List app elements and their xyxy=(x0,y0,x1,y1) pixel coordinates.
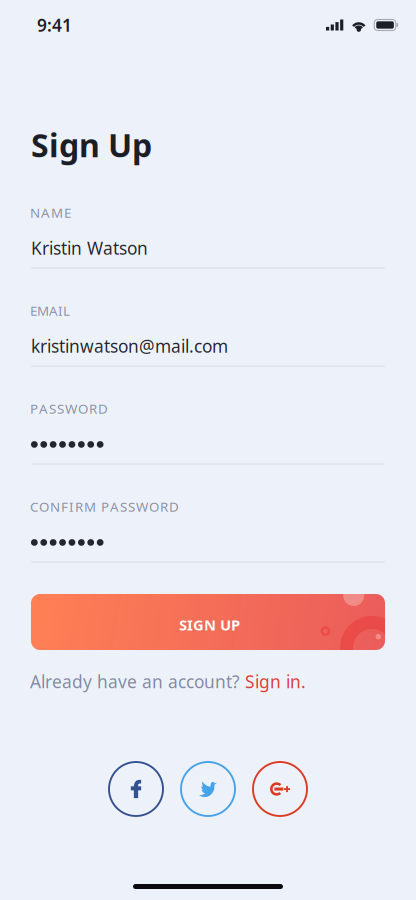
staticText: EMAIL xyxy=(30,302,70,319)
button[interactable]: Sign up with Facebook xyxy=(109,762,163,816)
staticText: Sign Up xyxy=(31,124,152,166)
staticText: SIGN UP xyxy=(179,615,240,634)
staticText: P A S S W O R D xyxy=(30,400,108,417)
staticText: Already have an account? xyxy=(30,670,245,693)
staticText: 9:41 xyxy=(37,13,72,36)
button[interactable]: Sign in. xyxy=(245,670,306,693)
staticText: C O N F I R M P A S S W O R D xyxy=(30,498,179,515)
staticText: kristinwatson@mail.com xyxy=(31,335,228,358)
staticText: Kristin Watson xyxy=(31,237,148,260)
button[interactable]: SIGN UP xyxy=(31,594,385,650)
button[interactable]: Sign up with Twitter xyxy=(181,762,235,816)
staticText: N A M E xyxy=(30,204,71,221)
staticText: Sign in. xyxy=(245,670,306,693)
button[interactable]: Sign up with Google Plus xyxy=(253,762,307,816)
